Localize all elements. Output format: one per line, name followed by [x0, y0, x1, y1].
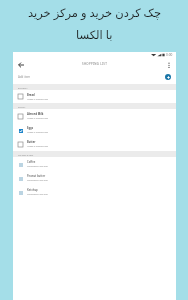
- staticText: Bread: [27, 93, 35, 97]
- staticText: Completed a day ago: [27, 165, 48, 168]
- staticText: Added 3 minutes ago: [27, 131, 48, 134]
- staticText: BAKERY: [18, 86, 28, 89]
- staticText: COMPLETED: [18, 153, 34, 156]
- button[interactable]: Ketchup: [13, 185, 176, 199]
- staticText: Completed a day ago: [27, 193, 48, 196]
- button[interactable]: Eggs: [13, 123, 176, 137]
- staticText: Ketchup: [27, 188, 38, 192]
- staticText: Peanut butter: [27, 174, 46, 178]
- button[interactable]: Bread: [13, 90, 176, 103]
- button[interactable]: Add item: [165, 74, 171, 80]
- staticText: Added 4 minutes ago: [27, 98, 48, 101]
- button[interactable]: More options: [163, 59, 174, 70]
- staticText: Almond Milk: [27, 112, 44, 116]
- staticText: SHOPPING LIST: [82, 62, 108, 66]
- button[interactable]: Almond Milk: [13, 109, 176, 123]
- staticText: Butter: [27, 140, 36, 144]
- staticText: Add item: [18, 75, 31, 79]
- staticText: با الکسا: [76, 27, 113, 43]
- staticText: Coffee: [27, 160, 36, 164]
- button[interactable]: Butter: [13, 137, 176, 151]
- button[interactable]: Peanut butter: [13, 171, 176, 185]
- staticText: 0:00: [166, 53, 173, 57]
- staticText: Eggs: [27, 126, 34, 130]
- button[interactable]: Coffee: [13, 157, 176, 171]
- staticText: Added 5 minutes ago: [27, 145, 48, 148]
- staticText: DAIRY: [18, 105, 26, 108]
- button[interactable]: Back: [15, 59, 26, 70]
- staticText: چک کردن خرید و مرکز خرید: [28, 5, 161, 21]
- staticText: Completed a day ago: [27, 179, 48, 182]
- staticText: Added 2 minutes ago: [27, 117, 48, 120]
